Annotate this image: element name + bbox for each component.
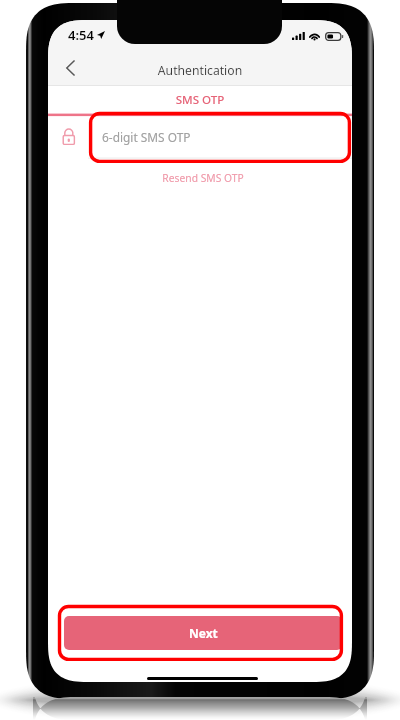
button[interactable]: Next [64,616,342,650]
staticText: Resend SMS OTP [51,171,352,185]
button[interactable]: Back [52,52,88,84]
button[interactable]: Resend SMS OTP [48,169,352,183]
staticText: Authentication [48,62,352,79]
button[interactable]: 6-digit SMS OTP [94,116,352,158]
staticText: 6-digit SMS OTP [102,129,191,145]
staticText: Next [189,625,218,641]
staticText: SMS OTP [48,92,352,108]
staticText: 4:54 [68,26,94,44]
